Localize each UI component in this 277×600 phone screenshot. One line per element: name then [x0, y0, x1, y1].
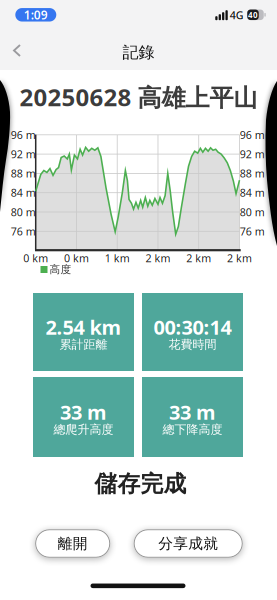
staticText: 88 m: [240, 166, 265, 180]
staticText: 0 km: [23, 251, 48, 265]
staticText: 花費時間: [168, 337, 216, 352]
staticText: 76 m: [11, 224, 36, 238]
staticText: 儲存完成: [94, 470, 186, 498]
staticText: 00:30:14: [153, 314, 231, 340]
staticText: 1:09: [24, 7, 48, 23]
staticText: 2 km: [145, 251, 170, 265]
staticText: 33 m: [60, 399, 107, 425]
staticText: 高度: [49, 263, 71, 276]
staticText: 92 m: [11, 147, 36, 161]
staticText: 80 m: [11, 205, 36, 219]
staticText: 20250628 高雄上平山: [19, 81, 257, 113]
staticText: 88 m: [11, 166, 36, 180]
staticText: 分享成就: [158, 534, 218, 552]
staticText: 76 m: [240, 224, 265, 238]
staticText: 總爬升高度: [53, 422, 113, 437]
staticText: 2 km: [227, 251, 252, 265]
staticText: 33 m: [169, 399, 216, 425]
staticText: 96 m: [240, 128, 265, 142]
staticText: 92 m: [240, 147, 265, 161]
button[interactable]: 離開: [35, 529, 110, 558]
staticText: 2 km: [186, 251, 211, 265]
staticText: 1 km: [105, 251, 130, 265]
staticText: 96 m: [11, 128, 36, 142]
button[interactable]: 分享成就: [134, 529, 243, 558]
staticText: 80 m: [240, 205, 265, 219]
staticText: 0 km: [64, 251, 89, 265]
staticText: 2.54 km: [45, 314, 121, 340]
staticText: 40: [248, 9, 258, 20]
staticText: 84 m: [11, 186, 36, 200]
staticText: 4G: [230, 8, 244, 22]
staticText: 離開: [58, 534, 88, 552]
staticText: 總下降高度: [162, 422, 222, 437]
staticText: 記錄: [122, 43, 154, 62]
button[interactable]: [12, 44, 21, 57]
staticText: 84 m: [240, 186, 265, 200]
staticText: 累計距離: [59, 337, 107, 352]
